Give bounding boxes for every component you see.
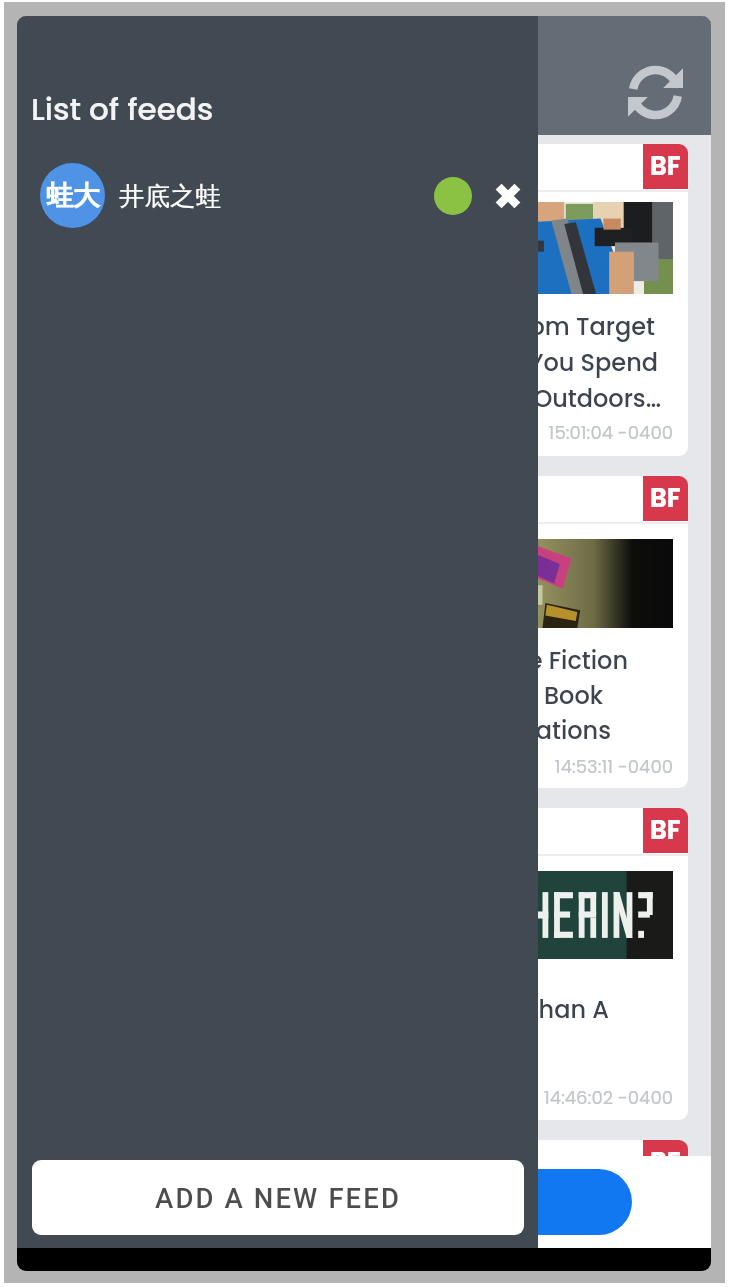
staticText: ce Fiction xyxy=(34,644,628,678)
staticText: 14:53:11 -0400 xyxy=(34,754,673,779)
staticText: BF xyxy=(650,148,681,184)
staticText: Outdoors… xyxy=(34,382,661,416)
button[interactable]: ADD A NEW FEED xyxy=(32,1160,524,1235)
staticText: 15:01:04 -0400 xyxy=(34,420,673,445)
button[interactable]: BF xyxy=(34,144,688,456)
button[interactable]: BF xyxy=(34,808,688,1120)
staticText: 14:46:02 -0400 xyxy=(34,1085,673,1110)
button[interactable]: Add feed xyxy=(437,1169,632,1235)
staticText: List of feeds xyxy=(31,87,214,130)
staticText: 蛙大 xyxy=(46,179,100,213)
button[interactable]: Remove feed xyxy=(485,173,531,219)
staticText: BF xyxy=(650,812,681,848)
staticText: from Target xyxy=(34,310,655,344)
staticText: BF xyxy=(650,480,681,516)
button[interactable]: Refresh xyxy=(617,54,693,130)
staticText: 井底之蛙 xyxy=(119,180,221,212)
button[interactable]: BF xyxy=(34,1140,688,1248)
staticText: You Spend xyxy=(34,346,658,380)
button[interactable]: 蛙大 xyxy=(17,147,538,244)
staticText: dations xyxy=(34,714,611,748)
staticText: Than A xyxy=(34,993,609,1027)
staticText: ADD A NEW FEED xyxy=(155,1182,401,1214)
staticText: Book xyxy=(34,679,603,713)
button[interactable]: BF xyxy=(34,476,688,788)
staticText: BF xyxy=(650,1144,681,1180)
